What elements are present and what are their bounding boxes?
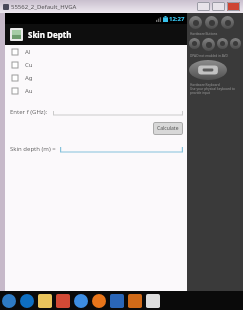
button[interactable]: D-pad (189, 60, 227, 80)
staticText: Skin Depth (28, 29, 72, 40)
button[interactable]: Internet Explorer (20, 294, 34, 308)
button[interactable]: Minimize (197, 2, 210, 11)
button[interactable]: File Explorer (38, 294, 52, 308)
button[interactable]: Emulator button (189, 16, 202, 29)
staticText: 55562_2_Default_HVGA (11, 3, 77, 11)
staticText: Enter f (GHz): (10, 108, 48, 116)
staticText: Ag (25, 74, 33, 82)
button[interactable]: Ag (5, 71, 187, 84)
button[interactable]: Media Player (56, 294, 70, 308)
staticText: Hardware Buttons (190, 32, 218, 36)
button[interactable]: Maximize (212, 2, 225, 11)
button[interactable]: Emulator button (221, 16, 234, 29)
staticText: Hardware Keyboard (190, 83, 220, 87)
staticText: DPAD not enabled in AVD (190, 54, 228, 58)
staticText: Calculate (157, 125, 179, 132)
button[interactable]: Firefox (92, 294, 106, 308)
button[interactable]: Frequency input (53, 105, 183, 116)
staticText: Cu (25, 61, 33, 69)
staticText: Use your physical keyboard to provide in… (190, 87, 243, 95)
button[interactable]: Start (2, 294, 16, 308)
button[interactable]: Emulator button (205, 16, 218, 29)
staticText: 12:27 (169, 15, 185, 23)
button[interactable]: Au (5, 84, 187, 97)
button[interactable]: Emulator button (217, 38, 228, 49)
button[interactable]: Emulator (146, 294, 160, 308)
button[interactable]: Emulator button (202, 38, 215, 51)
button[interactable]: App (110, 294, 124, 308)
button[interactable]: Al (5, 45, 187, 58)
button[interactable]: Skin depth result (60, 142, 183, 153)
button[interactable]: App 2 (128, 294, 142, 308)
button[interactable]: Emulator button (189, 38, 200, 49)
button[interactable]: Calculate (153, 122, 183, 135)
staticText: Au (25, 87, 33, 95)
button[interactable]: Chrome (74, 294, 88, 308)
button[interactable]: Close (227, 2, 240, 11)
staticText: Skin depth (m) = (10, 145, 56, 153)
button[interactable]: Cu (5, 58, 187, 71)
button[interactable]: Emulator button (230, 38, 241, 49)
staticText: Al (25, 48, 31, 56)
